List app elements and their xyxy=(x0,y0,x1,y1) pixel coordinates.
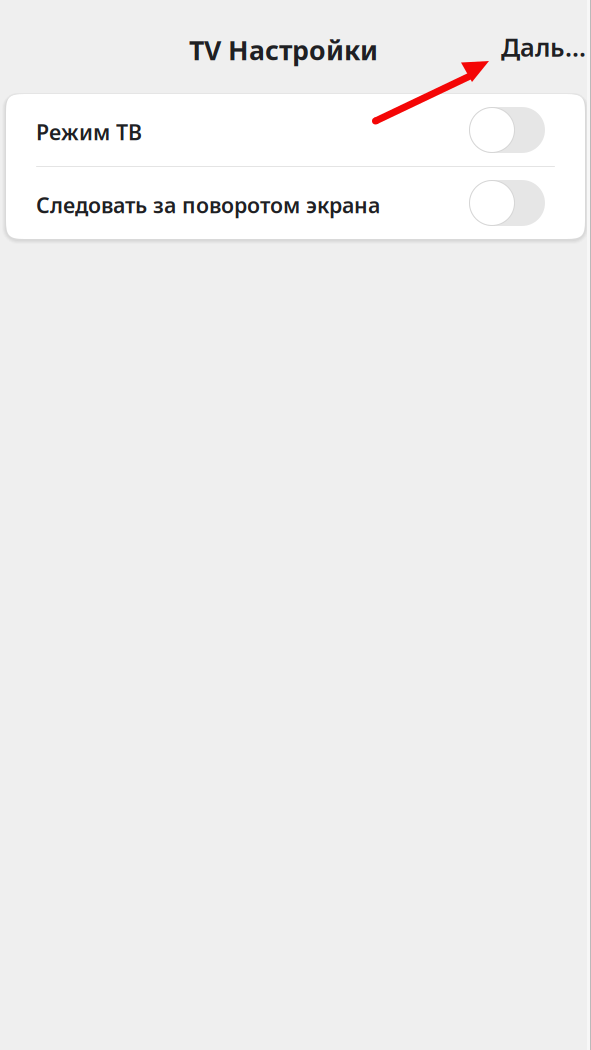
button[interactable]: Выключено xyxy=(6,94,585,166)
staticText: Даль... xyxy=(501,30,586,64)
staticText: Режим ТВ xyxy=(36,118,142,146)
button[interactable]: Выключено xyxy=(6,167,585,239)
staticText: TV Настройки xyxy=(189,32,378,68)
staticText: Следовать за поворотом экрана xyxy=(36,191,380,219)
button[interactable]: Даль... xyxy=(497,22,590,72)
